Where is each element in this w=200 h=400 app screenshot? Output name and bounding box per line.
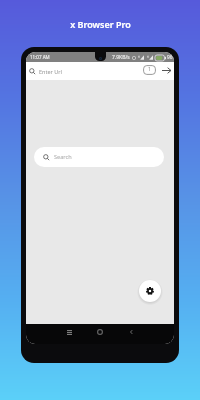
button[interactable]: Recents bbox=[62, 325, 76, 339]
button[interactable]: Back bbox=[124, 325, 138, 339]
button[interactable]: Go bbox=[159, 63, 174, 78]
staticText: 7.9KB/s bbox=[112, 54, 130, 61]
button[interactable]: Enter Url bbox=[29, 68, 62, 75]
button[interactable]: Search bbox=[34, 147, 164, 167]
staticText: x Browser Pro bbox=[70, 18, 131, 30]
staticText: Search bbox=[54, 153, 72, 161]
button[interactable]: Home bbox=[93, 325, 107, 339]
staticText: 1 bbox=[148, 66, 151, 73]
staticText: Enter Url bbox=[39, 68, 62, 75]
staticText: 96 bbox=[167, 54, 173, 61]
staticText: 11:07 AM bbox=[30, 54, 50, 60]
button[interactable]: Settings bbox=[139, 280, 161, 302]
button[interactable]: Tabs bbox=[141, 62, 157, 77]
